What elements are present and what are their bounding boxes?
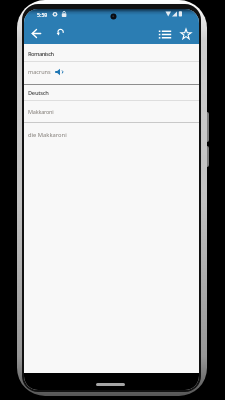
staticText: Makkaroni: [28, 108, 54, 115]
button[interactable]: Makkaroni: [26, 106, 86, 118]
button[interactable]: [54, 68, 64, 77]
button[interactable]: [158, 28, 172, 41]
button[interactable]: [96, 383, 125, 386]
button[interactable]: die Makkaroni: [26, 129, 96, 141]
button[interactable]: macruns: [26, 66, 71, 78]
staticText: 5:59: [37, 11, 48, 18]
button[interactable]: [30, 27, 43, 40]
staticText: Deutsch: [28, 89, 49, 97]
button[interactable]: [180, 28, 192, 41]
staticText: die Makkaroni: [28, 131, 67, 139]
staticText: macruns: [28, 68, 51, 75]
staticText: Romanisch: [28, 50, 54, 58]
button[interactable]: [54, 26, 67, 39]
button[interactable]: [24, 19, 199, 44]
